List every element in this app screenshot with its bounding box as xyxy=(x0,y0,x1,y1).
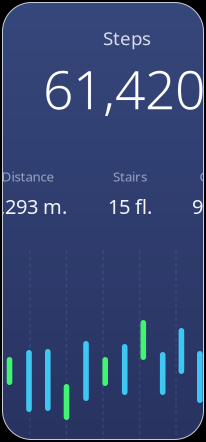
staticText: Stairs xyxy=(113,167,147,185)
staticText: Steps xyxy=(103,26,151,50)
staticText: 61,420 xyxy=(43,53,205,124)
staticText: 15 fl. xyxy=(108,193,152,220)
staticText: 1,293 m. xyxy=(0,193,67,220)
staticText: 984 cal xyxy=(192,193,206,220)
staticText: Distance xyxy=(1,167,54,185)
staticText: Calories xyxy=(199,167,206,185)
button[interactable]: Steps xyxy=(103,26,151,50)
